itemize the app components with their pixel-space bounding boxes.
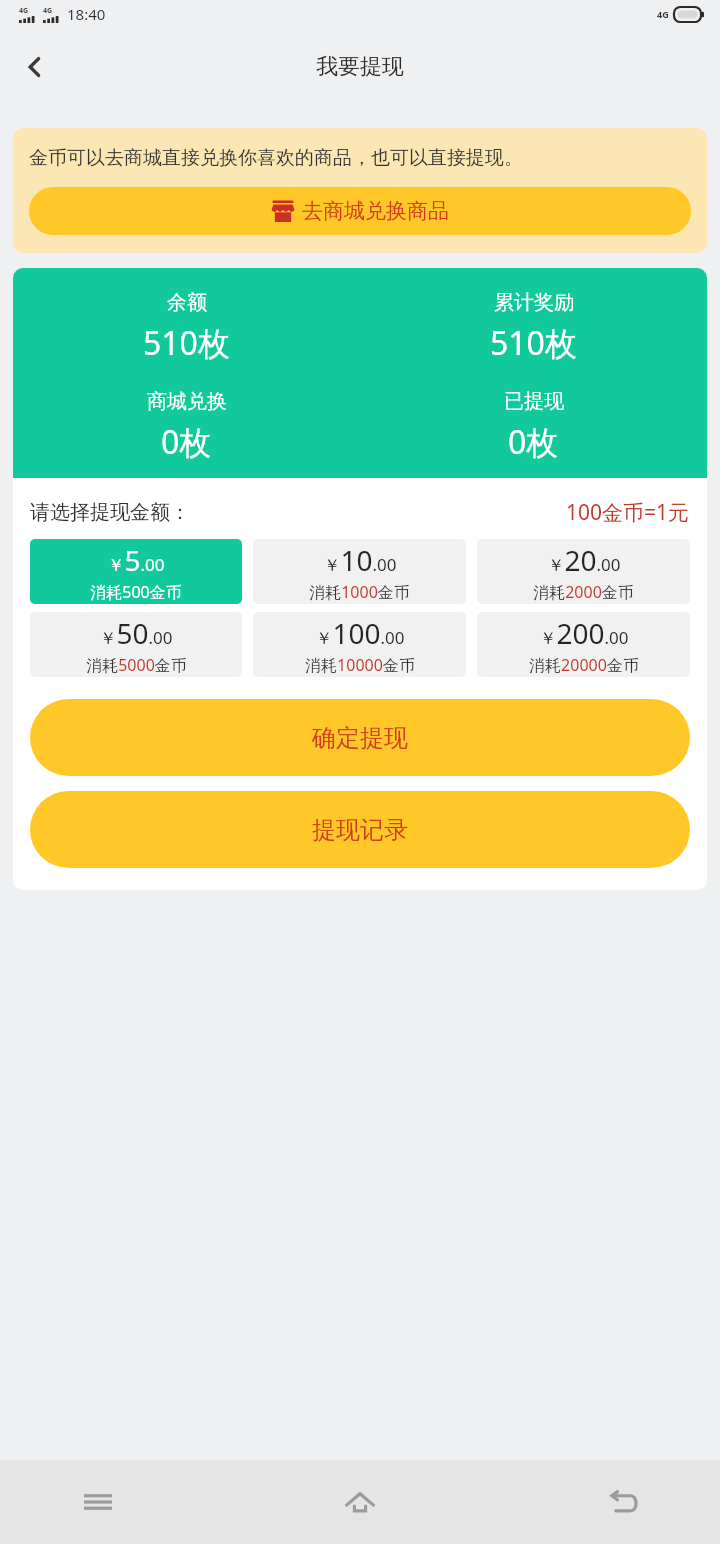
staticText: 4G (43, 6, 53, 16)
button[interactable]: Back (594, 1474, 650, 1530)
button[interactable]: ￥20.00 (477, 539, 690, 604)
staticText: 商城兑换 (147, 389, 227, 414)
staticText: ￥50.00 (99, 614, 173, 652)
staticText: 消耗10000金币 (305, 654, 415, 676)
staticText: 金币可以去商城直接兑换你喜欢的商品，也可以直接提现。 (29, 146, 523, 170)
staticText: 确定提现 (312, 723, 408, 753)
staticText: 0枚 (508, 420, 559, 464)
button[interactable]: ￥100.00 (253, 612, 466, 677)
staticText: 累计奖励 (494, 290, 574, 315)
staticText: 0枚 (161, 420, 212, 464)
staticText: 请选择提现金额： (30, 500, 190, 525)
staticText: 消耗2000金币 (533, 581, 634, 603)
staticText: 已提现 (504, 389, 564, 414)
staticText: 100金币=1元 (566, 498, 690, 527)
staticText: ￥5.00 (107, 541, 165, 579)
staticText: 510枚 (143, 321, 230, 365)
staticText: 消耗20000金币 (529, 654, 639, 676)
staticText: 提现记录 (312, 815, 408, 845)
staticText: 18:40 (67, 4, 106, 24)
staticText: 消耗500金币 (90, 581, 182, 603)
staticText: 我要提现 (316, 53, 404, 81)
staticText: ￥100.00 (315, 614, 405, 652)
staticText: ￥200.00 (539, 614, 629, 652)
button[interactable]: 确定提现 (30, 699, 690, 776)
staticText: 消耗5000金币 (86, 654, 187, 676)
button[interactable]: ￥5.00 (30, 539, 242, 604)
staticText: 余额 (167, 290, 207, 315)
button[interactable]: Back (8, 40, 62, 94)
button[interactable]: ￥200.00 (477, 612, 690, 677)
button[interactable]: ￥10.00 (253, 539, 466, 604)
staticText: ￥10.00 (323, 541, 397, 579)
staticText: 去商城兑换商品 (302, 198, 449, 224)
button[interactable]: Home (332, 1474, 388, 1530)
staticText: 510枚 (490, 321, 577, 365)
button[interactable]: 去商城兑换商品 (29, 187, 691, 235)
button[interactable]: 提现记录 (30, 791, 690, 868)
button[interactable]: ￥50.00 (30, 612, 242, 677)
button[interactable]: Recents (70, 1474, 126, 1530)
staticText: ￥20.00 (547, 541, 621, 579)
staticText: 消耗1000金币 (309, 581, 410, 603)
staticText: 4G (657, 8, 669, 20)
staticText: 4G (19, 6, 29, 16)
